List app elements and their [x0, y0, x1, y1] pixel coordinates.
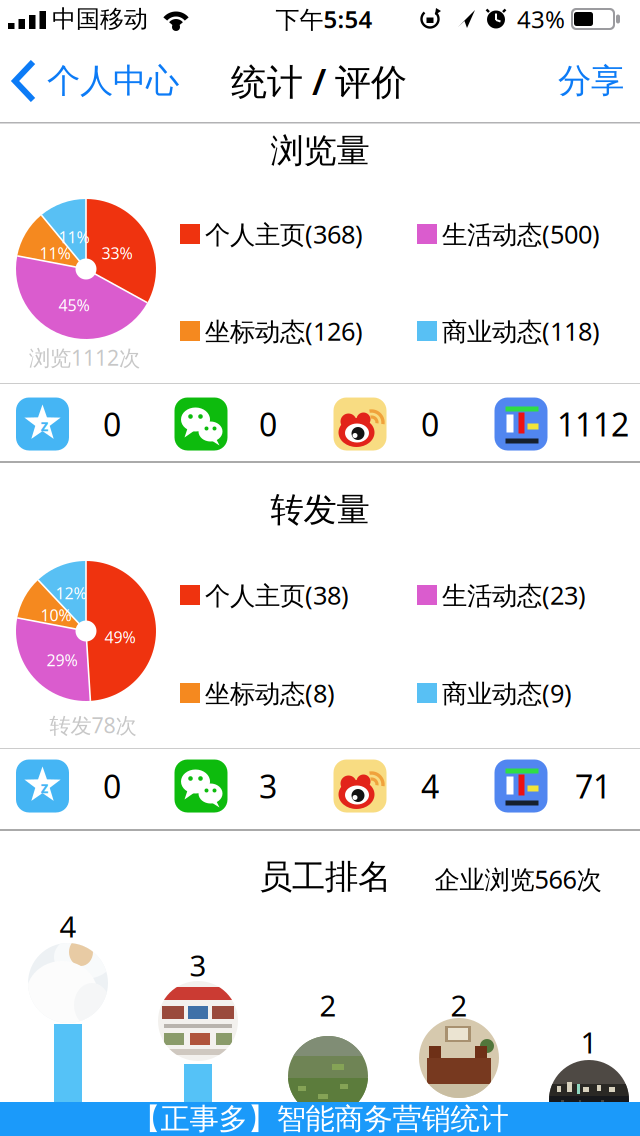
staticText: 员工排名: [259, 856, 391, 897]
staticText: 45%: [58, 294, 89, 316]
staticText: 浏览1112次: [29, 343, 140, 372]
button[interactable]: 【正事多】智能商务营销统计: [0, 1102, 640, 1136]
staticText: 4: [421, 765, 439, 807]
staticText: 个人中心: [47, 60, 179, 101]
staticText: 12%: [55, 582, 86, 604]
staticText: 0: [421, 403, 439, 445]
staticText: 转发量: [270, 489, 369, 530]
staticText: 统计 / 评价: [231, 57, 407, 105]
staticText: 0: [103, 765, 121, 807]
staticText: z: [40, 776, 48, 798]
staticText: 企业浏览566次: [434, 862, 601, 896]
staticText: 坐标动态(126): [205, 314, 363, 348]
staticText: 坐标动态(8): [205, 676, 335, 710]
staticText: 3: [259, 765, 277, 807]
staticText: 11%: [39, 242, 70, 264]
staticText: 生活动态(23): [442, 578, 586, 612]
button[interactable]: 分享: [546, 40, 636, 122]
staticText: 43%: [517, 3, 565, 35]
staticText: 转发78次: [49, 711, 136, 739]
staticText: 中国移动: [52, 4, 148, 34]
staticText: 4: [59, 906, 76, 945]
staticText: 2: [450, 985, 467, 1024]
staticText: 生活动态(500): [442, 217, 600, 251]
staticText: 3: [189, 945, 206, 984]
staticText: 1: [580, 1022, 597, 1061]
staticText: 下午5:54: [275, 3, 372, 35]
staticText: 个人主页(368): [205, 217, 363, 251]
staticText: 浏览量: [270, 130, 369, 171]
staticText: 29%: [46, 649, 77, 671]
staticText: 33%: [101, 242, 132, 264]
staticText: 11%: [58, 226, 89, 248]
staticText: 个人主页(38): [205, 578, 349, 612]
staticText: 71: [575, 765, 611, 807]
staticText: 0: [103, 403, 121, 445]
staticText: 1112: [557, 403, 629, 445]
staticText: 【正事多】智能商务营销统计: [131, 1101, 508, 1136]
staticText: 商业动态(9): [442, 676, 572, 710]
staticText: 2: [319, 985, 336, 1024]
button[interactable]: 个人中心: [0, 40, 190, 122]
staticText: 10%: [40, 604, 71, 626]
staticText: z: [40, 414, 48, 436]
staticText: 0: [259, 403, 277, 445]
staticText: 49%: [104, 626, 135, 648]
staticText: 分享: [558, 60, 624, 101]
staticText: 商业动态(118): [442, 314, 600, 348]
